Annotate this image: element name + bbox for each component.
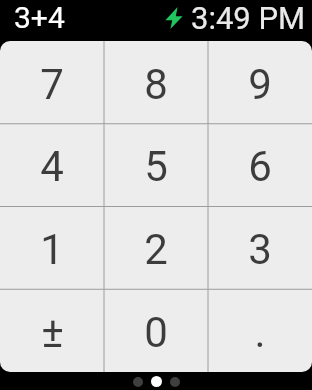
button[interactable]: Current page: [151, 376, 162, 387]
button[interactable]: 2: [104, 206, 208, 289]
button[interactable]: Previous page: [133, 377, 143, 387]
button[interactable]: 3+4: [14, 0, 65, 35]
button[interactable]: 8: [104, 41, 208, 123]
other: Charging: [165, 7, 183, 29]
staticText: 0: [144, 308, 168, 357]
staticText: .: [254, 308, 266, 357]
staticText: 4: [40, 142, 64, 191]
staticText: 3:49 PM: [191, 0, 306, 36]
button[interactable]: Next page: [170, 377, 180, 387]
button[interactable]: 0: [104, 289, 208, 372]
button[interactable]: 9: [208, 41, 312, 123]
staticText: ±: [41, 308, 64, 357]
button[interactable]: .: [208, 289, 312, 372]
button[interactable]: 1: [0, 206, 104, 289]
button[interactable]: 6: [208, 123, 312, 206]
staticText: 8: [144, 60, 168, 109]
staticText: 3: [248, 225, 272, 274]
staticText: 5: [144, 142, 168, 191]
button[interactable]: ±: [0, 289, 104, 372]
staticText: 7: [40, 60, 64, 109]
button[interactable]: 3: [208, 206, 312, 289]
staticText: 1: [40, 225, 64, 274]
button[interactable]: 5: [104, 123, 208, 206]
button[interactable]: 7: [0, 41, 104, 123]
staticText: 9: [248, 60, 272, 109]
staticText: 2: [144, 225, 168, 274]
button[interactable]: 4: [0, 123, 104, 206]
staticText: 6: [248, 142, 272, 191]
